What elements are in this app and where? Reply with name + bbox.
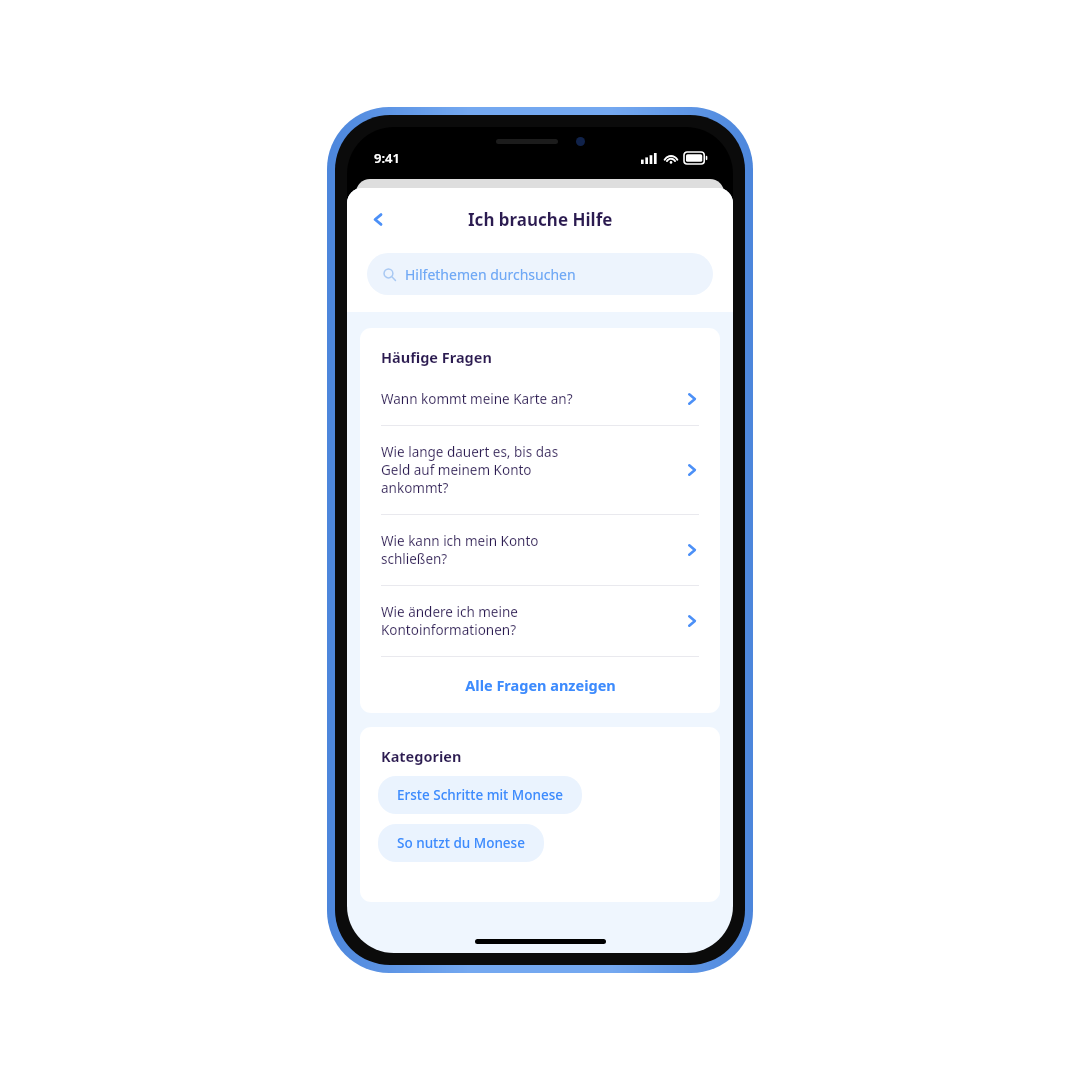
button[interactable]: Wie kann ich mein Konto [360, 515, 720, 586]
staticText: Geld auf meinem Konto [381, 461, 532, 479]
staticText: Erste Schritte mit Monese [397, 786, 563, 804]
button[interactable]: Wie ändere ich meine [360, 586, 720, 657]
staticText: Wie lange dauert es, bis das [381, 443, 559, 461]
staticText: ankommt? [381, 479, 449, 497]
staticText: Wie kann ich mein Konto [381, 532, 539, 550]
staticText: Wann kommt meine Karte an? [381, 390, 573, 408]
staticText: schließen? [381, 550, 448, 568]
button[interactable]: Back [361, 202, 395, 236]
button[interactable]: Erste Schritte mit Monese [378, 776, 582, 814]
button[interactable]: Wie lange dauert es, bis das [360, 426, 720, 515]
staticText: 9:41 [374, 149, 400, 167]
staticText: So nutzt du Monese [397, 834, 525, 852]
staticText: Kategorien [381, 746, 462, 766]
button[interactable]: Alle Fragen anzeigen [360, 657, 720, 713]
staticText: Ich brauche Hilfe [468, 208, 613, 231]
button[interactable]: So nutzt du Monese [378, 824, 544, 862]
staticText: Alle Fragen anzeigen [465, 675, 616, 695]
button[interactable]: Hilfethemen durchsuchen [367, 253, 713, 295]
staticText: Hilfethemen durchsuchen [405, 265, 576, 284]
button[interactable]: Wann kommt meine Karte an? [360, 373, 720, 426]
staticText: Häufige Fragen [381, 347, 492, 367]
staticText: Kontoinformationen? [381, 621, 516, 639]
staticText: Wie ändere ich meine [381, 603, 518, 621]
